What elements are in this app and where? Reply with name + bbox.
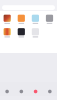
button[interactable] [18,15,25,24]
button[interactable] [32,15,39,24]
button[interactable]: Tab 2 [20,90,23,93]
button[interactable]: Tab 1 [5,90,9,93]
button[interactable]: Tab 4 [48,90,52,93]
button[interactable] [18,28,25,37]
button[interactable] [32,28,39,37]
button[interactable] [46,15,53,24]
button[interactable] [4,28,11,37]
button[interactable] [4,15,11,24]
button[interactable]: Tab 3 [34,90,37,93]
